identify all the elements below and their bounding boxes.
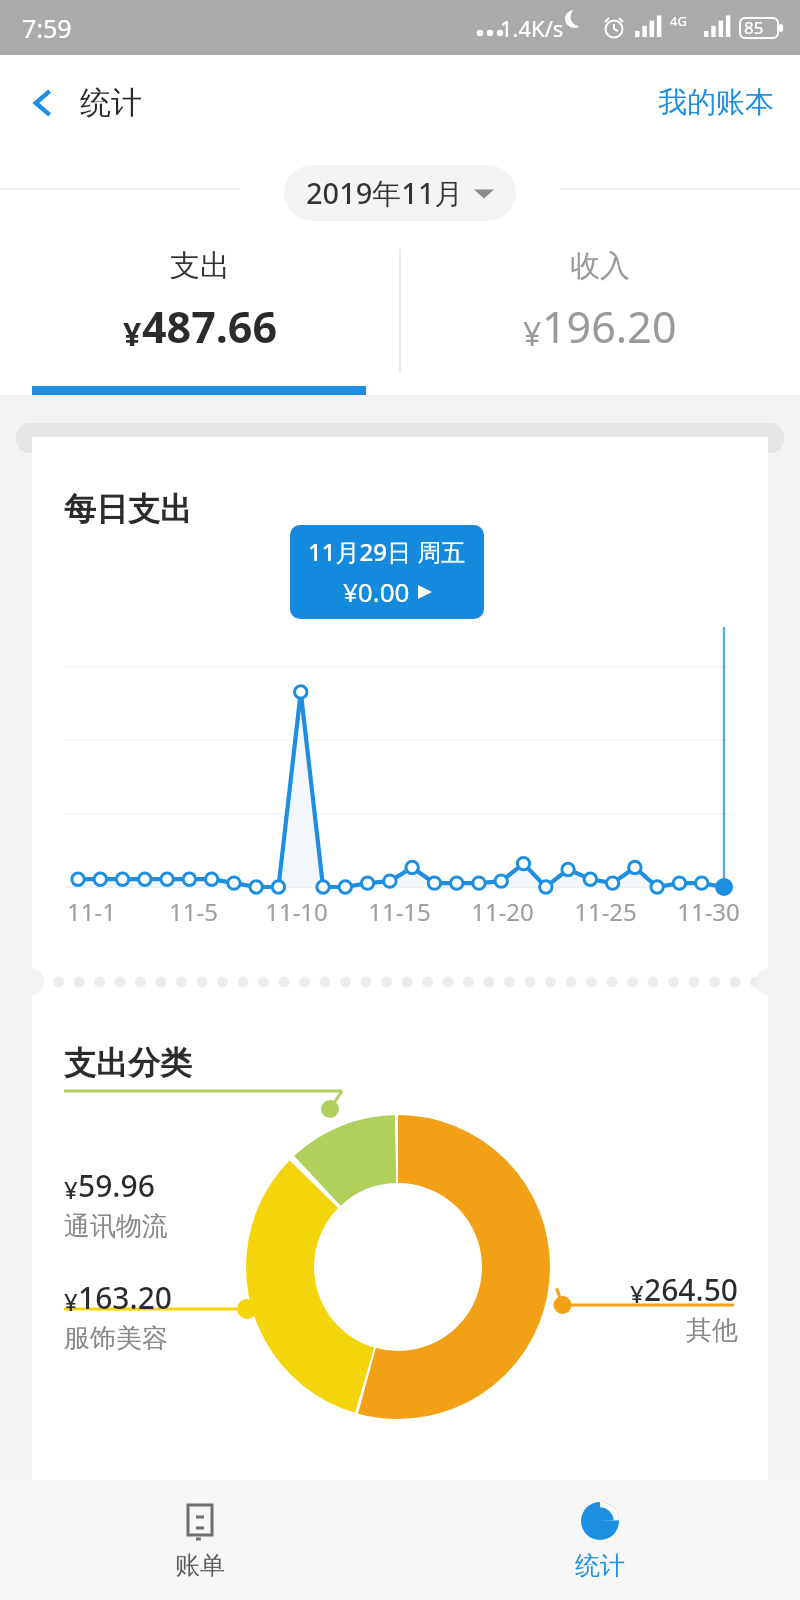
staticText: 196.20	[542, 297, 677, 356]
staticText: 账单	[175, 1550, 225, 1581]
staticText: 487.66	[142, 297, 278, 356]
button[interactable]: 2019年11月	[284, 165, 516, 221]
staticText: ¥	[123, 312, 142, 356]
staticText: 我的账本	[658, 84, 774, 121]
staticText: ¥	[64, 1173, 78, 1206]
button[interactable]: 账单	[0, 1480, 400, 1600]
staticText: 11-25	[574, 895, 637, 928]
staticText: 59.96	[78, 1165, 155, 1206]
other: Back	[28, 85, 58, 121]
staticText: 统计	[80, 83, 142, 122]
staticText: 11月29日 周五	[308, 535, 466, 568]
staticText: 11-10	[265, 895, 328, 928]
staticText: ¥	[64, 1285, 78, 1318]
staticText: 1.4K/s	[500, 13, 564, 43]
staticText: 11-1	[67, 895, 116, 928]
button[interactable]: 我的账本	[632, 70, 800, 135]
button[interactable]: Back	[0, 73, 156, 132]
button[interactable]: 11月29日 周五	[290, 525, 484, 619]
staticText: 264.50	[644, 1269, 738, 1310]
staticText: 收入	[570, 247, 630, 285]
staticText: 11-30	[677, 895, 740, 928]
staticText: 85	[744, 16, 764, 39]
staticText: 统计	[575, 1550, 625, 1581]
staticText: 支出分类	[64, 1043, 192, 1083]
staticText: 11-5	[169, 895, 218, 928]
staticText: 其他	[686, 1314, 738, 1347]
staticText: 每日支出	[64, 489, 192, 529]
button[interactable]: 支出	[0, 235, 400, 395]
staticText: ¥	[523, 312, 542, 356]
staticText: 4G	[670, 12, 687, 30]
staticText: 支出	[170, 247, 230, 285]
staticText: 11-15	[368, 895, 431, 928]
staticText: 通讯物流	[64, 1210, 168, 1243]
staticText: ¥	[630, 1277, 644, 1310]
staticText: 2019年11月	[306, 173, 464, 213]
staticText: ¥0.00	[343, 574, 410, 609]
button[interactable]: 统计	[400, 1480, 800, 1600]
staticText: 服饰美容	[64, 1322, 168, 1355]
staticText: 7:59	[22, 11, 72, 45]
staticText: 11-20	[471, 895, 534, 928]
button[interactable]: 收入	[400, 235, 800, 395]
staticText: 163.20	[78, 1277, 172, 1318]
